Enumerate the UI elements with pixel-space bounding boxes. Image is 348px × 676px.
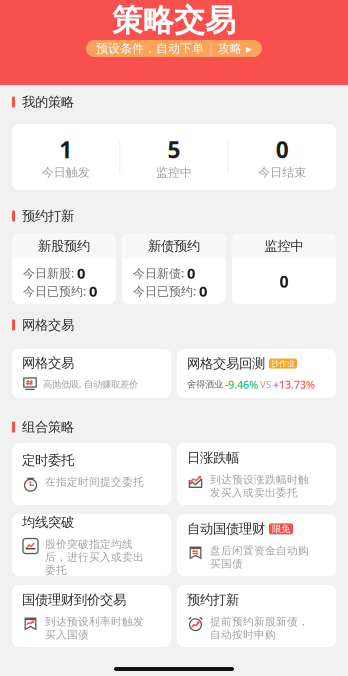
- staticText: 定时委托: [22, 452, 74, 468]
- button[interactable]: 1: [12, 124, 119, 190]
- staticText: 在指定时间提交委托: [45, 475, 144, 488]
- staticText: 网格交易: [22, 355, 74, 371]
- staticText: 监控中: [156, 165, 192, 180]
- staticText: -9.46%: [225, 377, 258, 392]
- staticText: 到达预设利率时触发买入国债: [45, 615, 144, 641]
- staticText: 1: [59, 134, 72, 164]
- button[interactable]: 均线突破: [12, 514, 171, 576]
- button[interactable]: 自动国债理财: [177, 514, 336, 576]
- button[interactable]: 预约打新: [177, 585, 336, 647]
- staticText: +13.73%: [273, 377, 315, 392]
- staticText: 预约打新: [22, 208, 74, 224]
- staticText: 新股预约: [38, 238, 90, 254]
- button[interactable]: 网格交易: [12, 349, 171, 398]
- staticText: 网格交易: [22, 317, 74, 333]
- staticText: 今日新股:: [23, 265, 74, 281]
- button[interactable]: 新债预约: [122, 233, 226, 304]
- staticText: 0: [187, 263, 195, 283]
- button[interactable]: 0: [229, 124, 336, 190]
- button[interactable]: 网格交易回测: [177, 349, 336, 398]
- staticText: 到达预设涨跌幅时触发买入或卖出委托: [210, 473, 309, 499]
- staticText: 抄作业: [271, 359, 295, 368]
- staticText: 5: [167, 134, 180, 164]
- staticText: 自动国债理财: [187, 521, 265, 537]
- staticText: 均线突破: [22, 514, 74, 531]
- button[interactable]: 预设条件，自动下单: [86, 40, 262, 57]
- staticText: 组合策略: [22, 419, 74, 435]
- button[interactable]: 日涨跌幅: [177, 443, 336, 505]
- staticText: 股价突破指定均线后，进行买入或卖出委托: [45, 537, 144, 577]
- staticText: 高抛低吸, 自动赚取差价: [43, 378, 138, 390]
- staticText: 提前预约新股新债，自动按时申购: [210, 615, 309, 641]
- staticText: 0: [279, 271, 288, 292]
- staticText: 0: [77, 263, 85, 283]
- staticText: 0: [276, 134, 289, 164]
- button[interactable]: 定时委托: [12, 443, 171, 505]
- button[interactable]: 国债理财到价交易: [12, 585, 171, 647]
- staticText: 舍得酒业: [187, 379, 223, 390]
- staticText: 盘后闲置资金自动购买国债: [210, 544, 309, 570]
- staticText: 0: [199, 281, 207, 301]
- staticText: 攻略 ▸: [218, 41, 252, 56]
- staticText: |: [208, 41, 214, 56]
- staticText: 我的策略: [22, 94, 74, 110]
- staticText: 国债理财到价交易: [22, 592, 126, 608]
- staticText: 今日已预约:: [133, 283, 196, 299]
- button[interactable]: 监控中: [232, 233, 336, 304]
- staticText: 预约打新: [187, 592, 239, 608]
- staticText: 预设条件，自动下单: [96, 41, 204, 56]
- staticText: 策略交易: [112, 2, 236, 39]
- button[interactable]: 新股预约: [12, 233, 116, 304]
- staticText: 网格交易回测: [187, 355, 265, 372]
- staticText: 今日触发: [42, 165, 90, 180]
- staticText: 0: [89, 281, 97, 301]
- staticText: 限免: [272, 523, 290, 535]
- staticText: 监控中: [264, 238, 303, 254]
- staticText: 今日新债:: [133, 265, 184, 281]
- staticText: 新债预约: [148, 238, 200, 254]
- staticText: 今日已预约:: [23, 283, 86, 299]
- staticText: 今日结束: [258, 165, 306, 180]
- staticText: VS: [260, 378, 271, 391]
- button[interactable]: 5: [120, 124, 228, 190]
- staticText: 日涨跌幅: [187, 450, 239, 466]
